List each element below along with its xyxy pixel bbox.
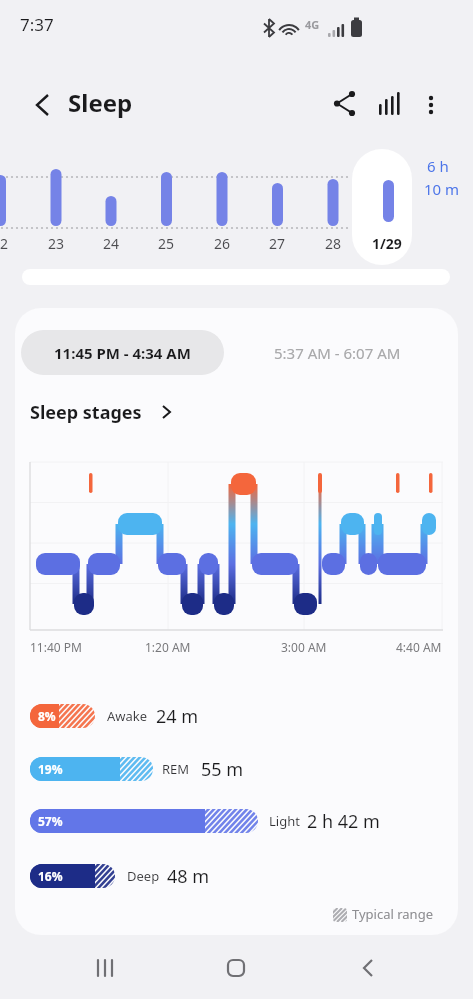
staticText: Sleep stages <box>30 400 142 425</box>
staticText: 3:00 AM <box>281 639 327 655</box>
staticText: REM <box>162 760 190 778</box>
staticText: 19% <box>38 761 63 777</box>
button[interactable]: 5:37 AM - 6:07 AM <box>247 330 427 375</box>
staticText: Awake <box>107 707 148 725</box>
staticText: Typical range <box>352 905 433 923</box>
staticText: 23 <box>48 234 65 253</box>
button[interactable] <box>24 87 60 123</box>
staticText: 26 <box>214 234 231 253</box>
staticText: 2 h 42 m <box>307 809 380 834</box>
staticText: 28 <box>325 234 342 253</box>
staticText: 24 m <box>156 704 199 729</box>
button[interactable] <box>328 87 362 121</box>
button[interactable] <box>372 86 406 122</box>
staticText: 5:37 AM - 6:07 AM <box>274 343 401 363</box>
staticText: 57% <box>38 813 63 829</box>
staticText: 4:40 AM <box>396 639 442 655</box>
button[interactable] <box>85 948 125 988</box>
staticText: Light <box>269 812 300 830</box>
button[interactable] <box>348 948 388 988</box>
staticText: 2 <box>0 234 9 253</box>
staticText: 8% <box>38 708 56 724</box>
staticText: Sleep <box>68 86 133 119</box>
button[interactable] <box>352 149 412 265</box>
staticText: 55 m <box>201 757 244 782</box>
staticText: 10 m <box>424 179 460 199</box>
button[interactable] <box>216 948 256 988</box>
staticText: 6 h <box>427 156 449 176</box>
staticText: 48 m <box>167 864 210 889</box>
button[interactable]: 11:45 PM - 4:34 AM <box>21 330 224 375</box>
staticText: 16% <box>38 868 63 884</box>
staticText: 25 <box>158 234 175 253</box>
staticText: 24 <box>103 234 120 253</box>
button[interactable] <box>414 86 448 122</box>
staticText: 11:40 PM <box>30 639 82 655</box>
staticText: Deep <box>127 867 160 885</box>
staticText: 1:20 AM <box>145 639 191 655</box>
staticText: 4G <box>305 17 320 32</box>
button[interactable]: Sleep stages <box>30 396 180 426</box>
staticText: 11:45 PM - 4:34 AM <box>54 343 191 363</box>
staticText: 7:37 <box>20 13 54 36</box>
staticText: 1/29 <box>372 234 402 253</box>
staticText: 27 <box>269 234 286 253</box>
